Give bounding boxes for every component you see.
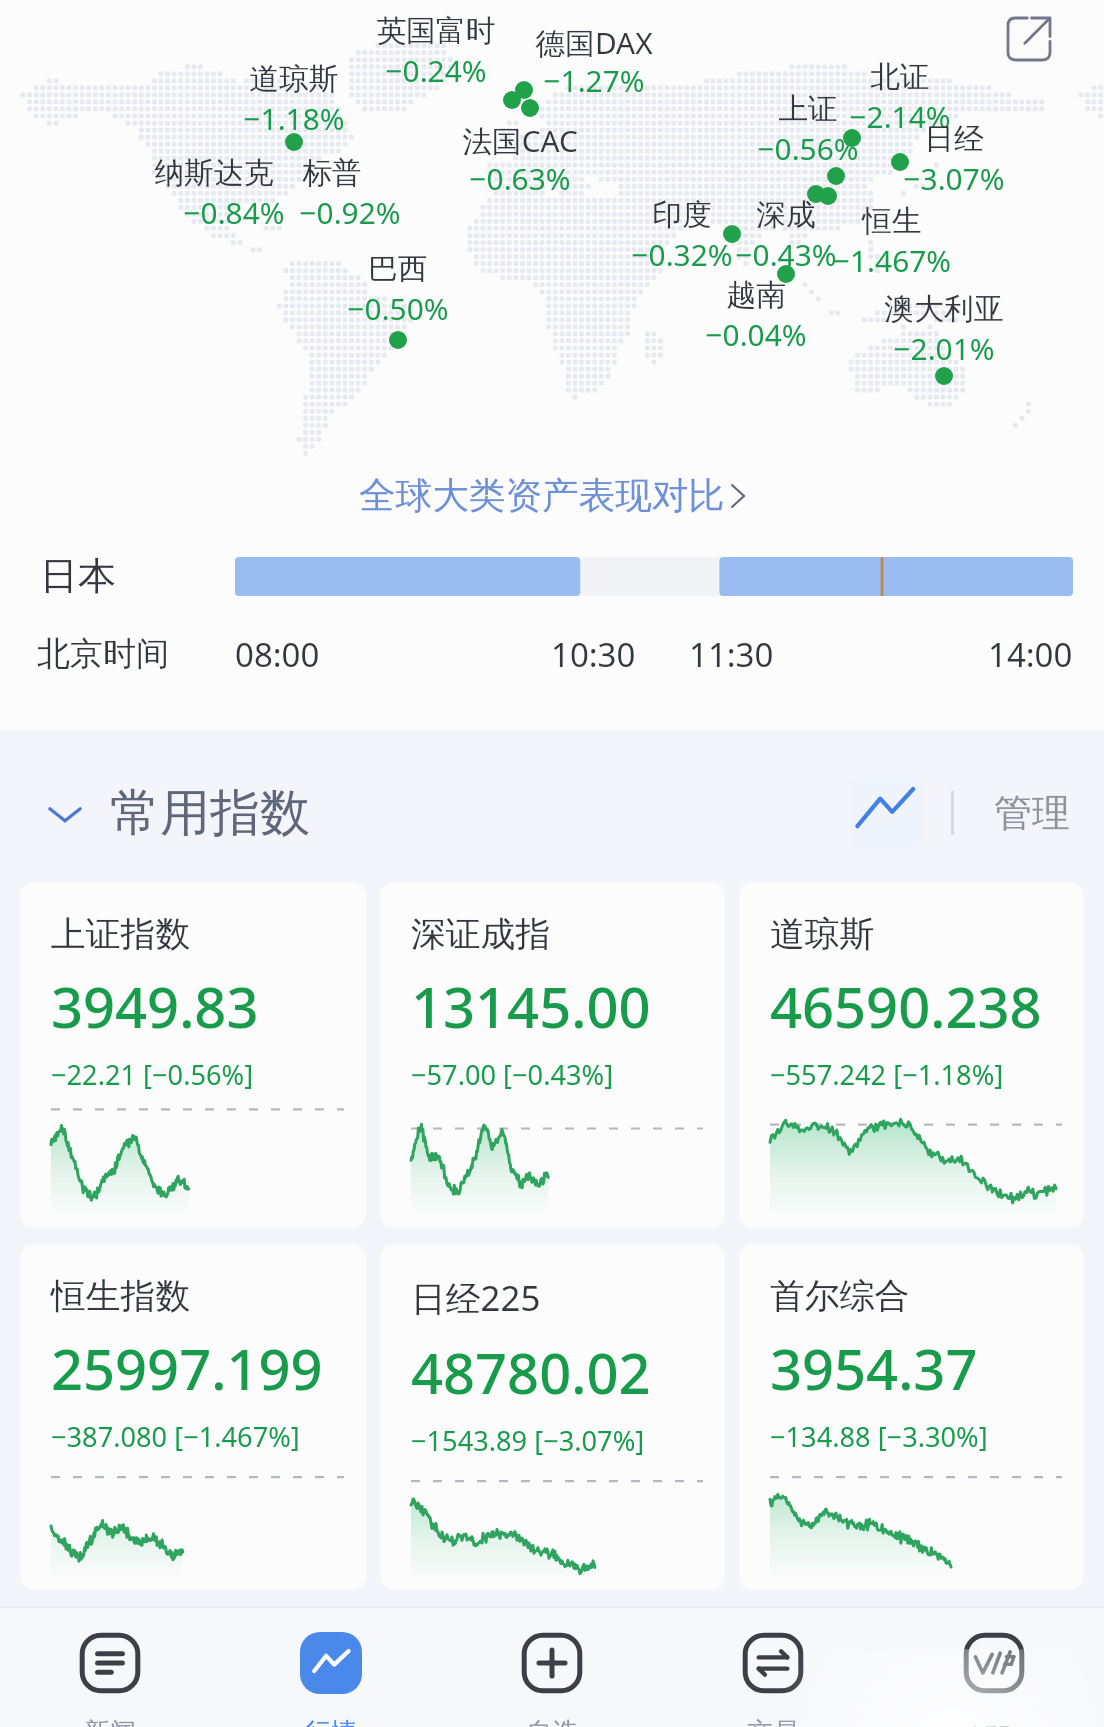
button[interactable]: VIP [883,1632,1104,1727]
staticText: −0.04% [646,314,866,355]
staticText: 全球大类资产表现对比 [359,473,725,519]
staticText: 常用指数 [110,782,310,845]
staticText: 交易 [747,1716,799,1727]
staticText: 道琼斯 [174,60,414,98]
staticText: −2.01% [820,328,1068,369]
staticText: 日经225 [411,1274,541,1322]
staticText: 13145.00 [411,968,651,1044]
staticText: 越南 [646,276,866,314]
staticText: 日经 [844,120,1064,158]
staticText: −0.84% [110,192,358,233]
staticText: 3949.83 [51,968,259,1044]
staticText: −0.92% [240,192,460,233]
staticText: −1543.89 [−3.07%] [411,1422,645,1459]
staticText: 46590.238 [770,968,1042,1044]
staticText: −1.467% [772,240,1012,281]
staticText: −0.43% [676,234,896,275]
button[interactable]: 日经225 [380,1244,725,1590]
staticText: −0.50% [288,288,508,329]
staticText: 10:30 [551,632,636,677]
staticText: 深证成指 [411,912,551,956]
button[interactable]: 深证成指 [380,882,725,1228]
staticText: −0.56% [698,128,918,169]
button[interactable]: 管理 [994,789,1070,837]
staticText: 道琼斯 [770,912,875,956]
other: 收起 [46,795,84,833]
staticText: 恒生指数 [51,1274,191,1318]
staticText: −0.32% [572,234,792,275]
staticText: 新闻 [84,1716,136,1727]
button[interactable]: 行情 [220,1632,441,1727]
staticText: −134.88 [−3.30%] [770,1418,988,1455]
staticText: −3.07% [844,158,1064,199]
button[interactable]: 全球大类资产表现对比 [0,464,1104,528]
staticText: 上证指数 [51,912,191,956]
staticText: −22.21 [−0.56%] [51,1056,254,1093]
staticText: 11:30 [689,632,774,677]
button[interactable]: 图表 [849,777,921,849]
staticText: 自选 [526,1716,578,1727]
staticText: −1.18% [174,98,414,139]
staticText: 英国富时 [312,12,560,50]
staticText: −2.14% [790,96,1010,137]
button[interactable]: 首尔综合 [739,1244,1084,1590]
staticText: 48780.02 [411,1334,651,1410]
staticText: 日本 [40,552,116,600]
staticText: −1.27% [464,60,724,101]
staticText: VIP [973,1716,1014,1727]
button[interactable]: 恒生指数 [20,1244,366,1590]
button[interactable]: 分享 [984,0,1074,76]
button[interactable]: 上证指数 [20,882,366,1228]
staticText: −0.63% [390,158,650,199]
staticText: 14:00 [988,632,1073,677]
staticText: 上证 [698,90,918,128]
staticText: −387.080 [−1.467%] [51,1418,300,1455]
staticText: 首尔综合 [770,1274,910,1318]
staticText: 印度 [572,196,792,234]
button[interactable]: 自选 [441,1632,662,1727]
staticText: −0.24% [312,50,560,91]
button[interactable]: 新闻 [0,1632,220,1727]
staticText: 25997.199 [51,1330,323,1406]
button[interactable]: 收起 [46,782,310,845]
staticText: 巴西 [288,250,508,288]
button[interactable]: 道琼斯 [739,882,1084,1228]
staticText: −57.00 [−0.43%] [411,1056,614,1093]
staticText: 纳斯达克 [90,154,338,192]
staticText: 德国DAX [464,22,724,63]
staticText: −557.242 [−1.18%] [770,1056,1004,1093]
staticText: 3954.37 [770,1330,978,1406]
staticText: 08:00 [235,632,320,677]
staticText: 澳大利亚 [820,290,1068,328]
staticText: 深成 [676,196,896,234]
staticText: 法国CAC [390,120,650,161]
staticText: 标普 [222,154,442,192]
staticText: 北证 [790,58,1010,96]
staticText: 恒生 [772,202,1012,240]
staticText: 行情 [305,1716,357,1727]
button[interactable]: 交易 [662,1632,883,1727]
staticText: 北京时间 [37,633,169,675]
